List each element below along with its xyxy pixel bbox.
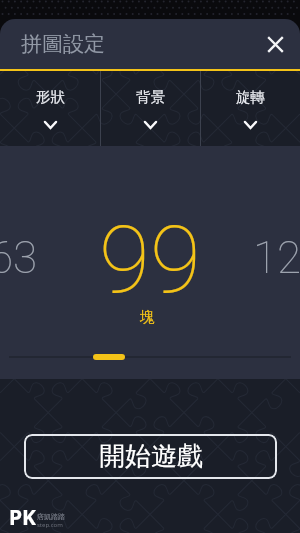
button[interactable]: 形狀 (0, 71, 100, 129)
staticText: 塊 (140, 308, 155, 327)
staticText: 99 (99, 206, 201, 315)
staticText: PK (9, 503, 36, 532)
staticText: 痞凱踏踏 (37, 512, 65, 521)
staticText: step.com (37, 521, 63, 529)
button[interactable]: Piece count slider (93, 354, 125, 360)
staticText: 拼圖設定 (21, 31, 105, 57)
button[interactable]: 背景 (101, 71, 200, 129)
button[interactable]: 開始遊戲 (24, 434, 277, 479)
staticText: 背景 (136, 88, 165, 106)
staticText: 形狀 (36, 88, 65, 106)
staticText: 開始遊戲 (99, 440, 203, 473)
staticText: 63 (0, 232, 38, 284)
staticText: 旋轉 (236, 88, 265, 106)
button[interactable]: 旋轉 (201, 71, 300, 129)
staticText: 120 (253, 232, 300, 284)
button[interactable]: Close (257, 26, 293, 62)
